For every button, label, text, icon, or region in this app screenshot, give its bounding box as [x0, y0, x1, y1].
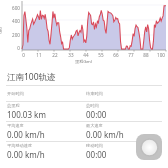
staticText: 77: [128, 52, 134, 58]
staticText: 0.00 km/h: [7, 149, 45, 160]
staticText: 88: [143, 52, 149, 58]
staticText: 44: [83, 52, 89, 58]
staticText: 11: [36, 52, 42, 58]
staticText: 总时间: [86, 103, 99, 108]
staticText: 里程(km): [75, 59, 93, 65]
staticText: 移动时间: [86, 143, 103, 148]
button[interactable]: 开始时间: [0, 86, 168, 101]
staticText: 400: [12, 18, 20, 24]
button[interactable]: 平均速度: [0, 122, 168, 141]
staticText: 600: [12, 5, 20, 11]
staticText: 平均移动速度: [7, 143, 33, 148]
staticText: 33: [68, 52, 74, 58]
staticText: 0: [22, 52, 25, 58]
staticText: 100.03 km: [7, 109, 46, 120]
staticText: 0.00 km/h: [86, 129, 124, 140]
staticText: 200: [12, 32, 20, 38]
staticText: 海拔(m): [0, 24, 2, 33]
button[interactable]: 江南100轨迹: [0, 68, 168, 85]
staticText: 55: [98, 52, 104, 58]
staticText: 开始时间: [7, 91, 84, 96]
staticText: 0: [17, 45, 20, 51]
staticText: 最大速度: [86, 123, 103, 128]
staticText: 结束时间: [86, 91, 168, 96]
staticText: 总里程: [7, 103, 20, 108]
button[interactable]: 平均移动速度: [0, 142, 168, 161]
staticText: 66: [113, 52, 119, 58]
staticText: 22: [52, 52, 58, 58]
staticText: 00:00: [86, 149, 107, 160]
staticText: 0.00 km/h: [7, 129, 45, 140]
button[interactable]: 总里程: [0, 102, 168, 121]
staticText: 江南100轨迹: [7, 71, 56, 83]
staticText: 100: [157, 52, 165, 58]
staticText: 平均速度: [7, 123, 24, 128]
button[interactable]: Record: [136, 134, 162, 160]
staticText: 00:00: [86, 109, 107, 120]
